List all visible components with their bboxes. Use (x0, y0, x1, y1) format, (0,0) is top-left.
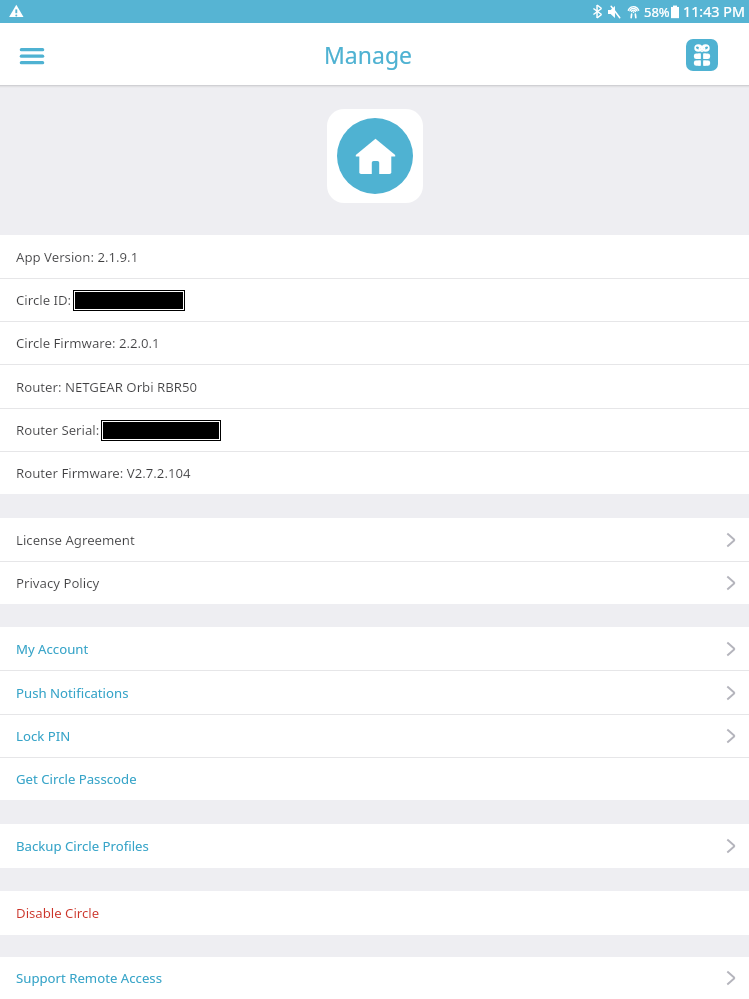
button[interactable]: Support Remote Access (0, 957, 749, 999)
button[interactable]: Rewards (686, 39, 718, 71)
button[interactable]: Push Notifications (0, 671, 749, 714)
staticText: Push Notifications (16, 684, 129, 702)
button[interactable]: Get Circle Passcode (0, 758, 749, 800)
button[interactable]: Menu (8, 31, 56, 79)
staticText: Router Serial: (16, 421, 100, 439)
button[interactable]: Lock PIN (0, 715, 749, 757)
button[interactable]: License Agreement (0, 518, 749, 561)
staticText: Support Remote Access (16, 969, 162, 987)
staticText: Lock PIN (16, 727, 71, 745)
button[interactable]: Backup Circle Profiles (0, 824, 749, 868)
staticText: Backup Circle Profiles (16, 837, 149, 855)
staticText: Circle ID: (16, 291, 72, 309)
staticText: Router: NETGEAR Orbi RBR50 (16, 378, 198, 396)
staticText: Router Firmware: V2.7.2.104 (16, 464, 191, 482)
staticText: Disable Circle (16, 904, 100, 922)
button[interactable]: Privacy Policy (0, 562, 749, 604)
staticText: Privacy Policy (16, 574, 100, 592)
staticText: Get Circle Passcode (16, 770, 137, 788)
staticText: 11:43 PM (683, 2, 745, 21)
staticText: Manage (324, 39, 412, 70)
staticText: License Agreement (16, 531, 135, 549)
button[interactable]: My Account (0, 627, 749, 670)
staticText: Circle Firmware: 2.2.0.1 (16, 334, 160, 352)
staticText: 58% (644, 3, 670, 21)
staticText: My Account (16, 640, 89, 658)
staticText: App Version: 2.1.9.1 (16, 248, 139, 266)
button[interactable]: Disable Circle (0, 891, 749, 935)
